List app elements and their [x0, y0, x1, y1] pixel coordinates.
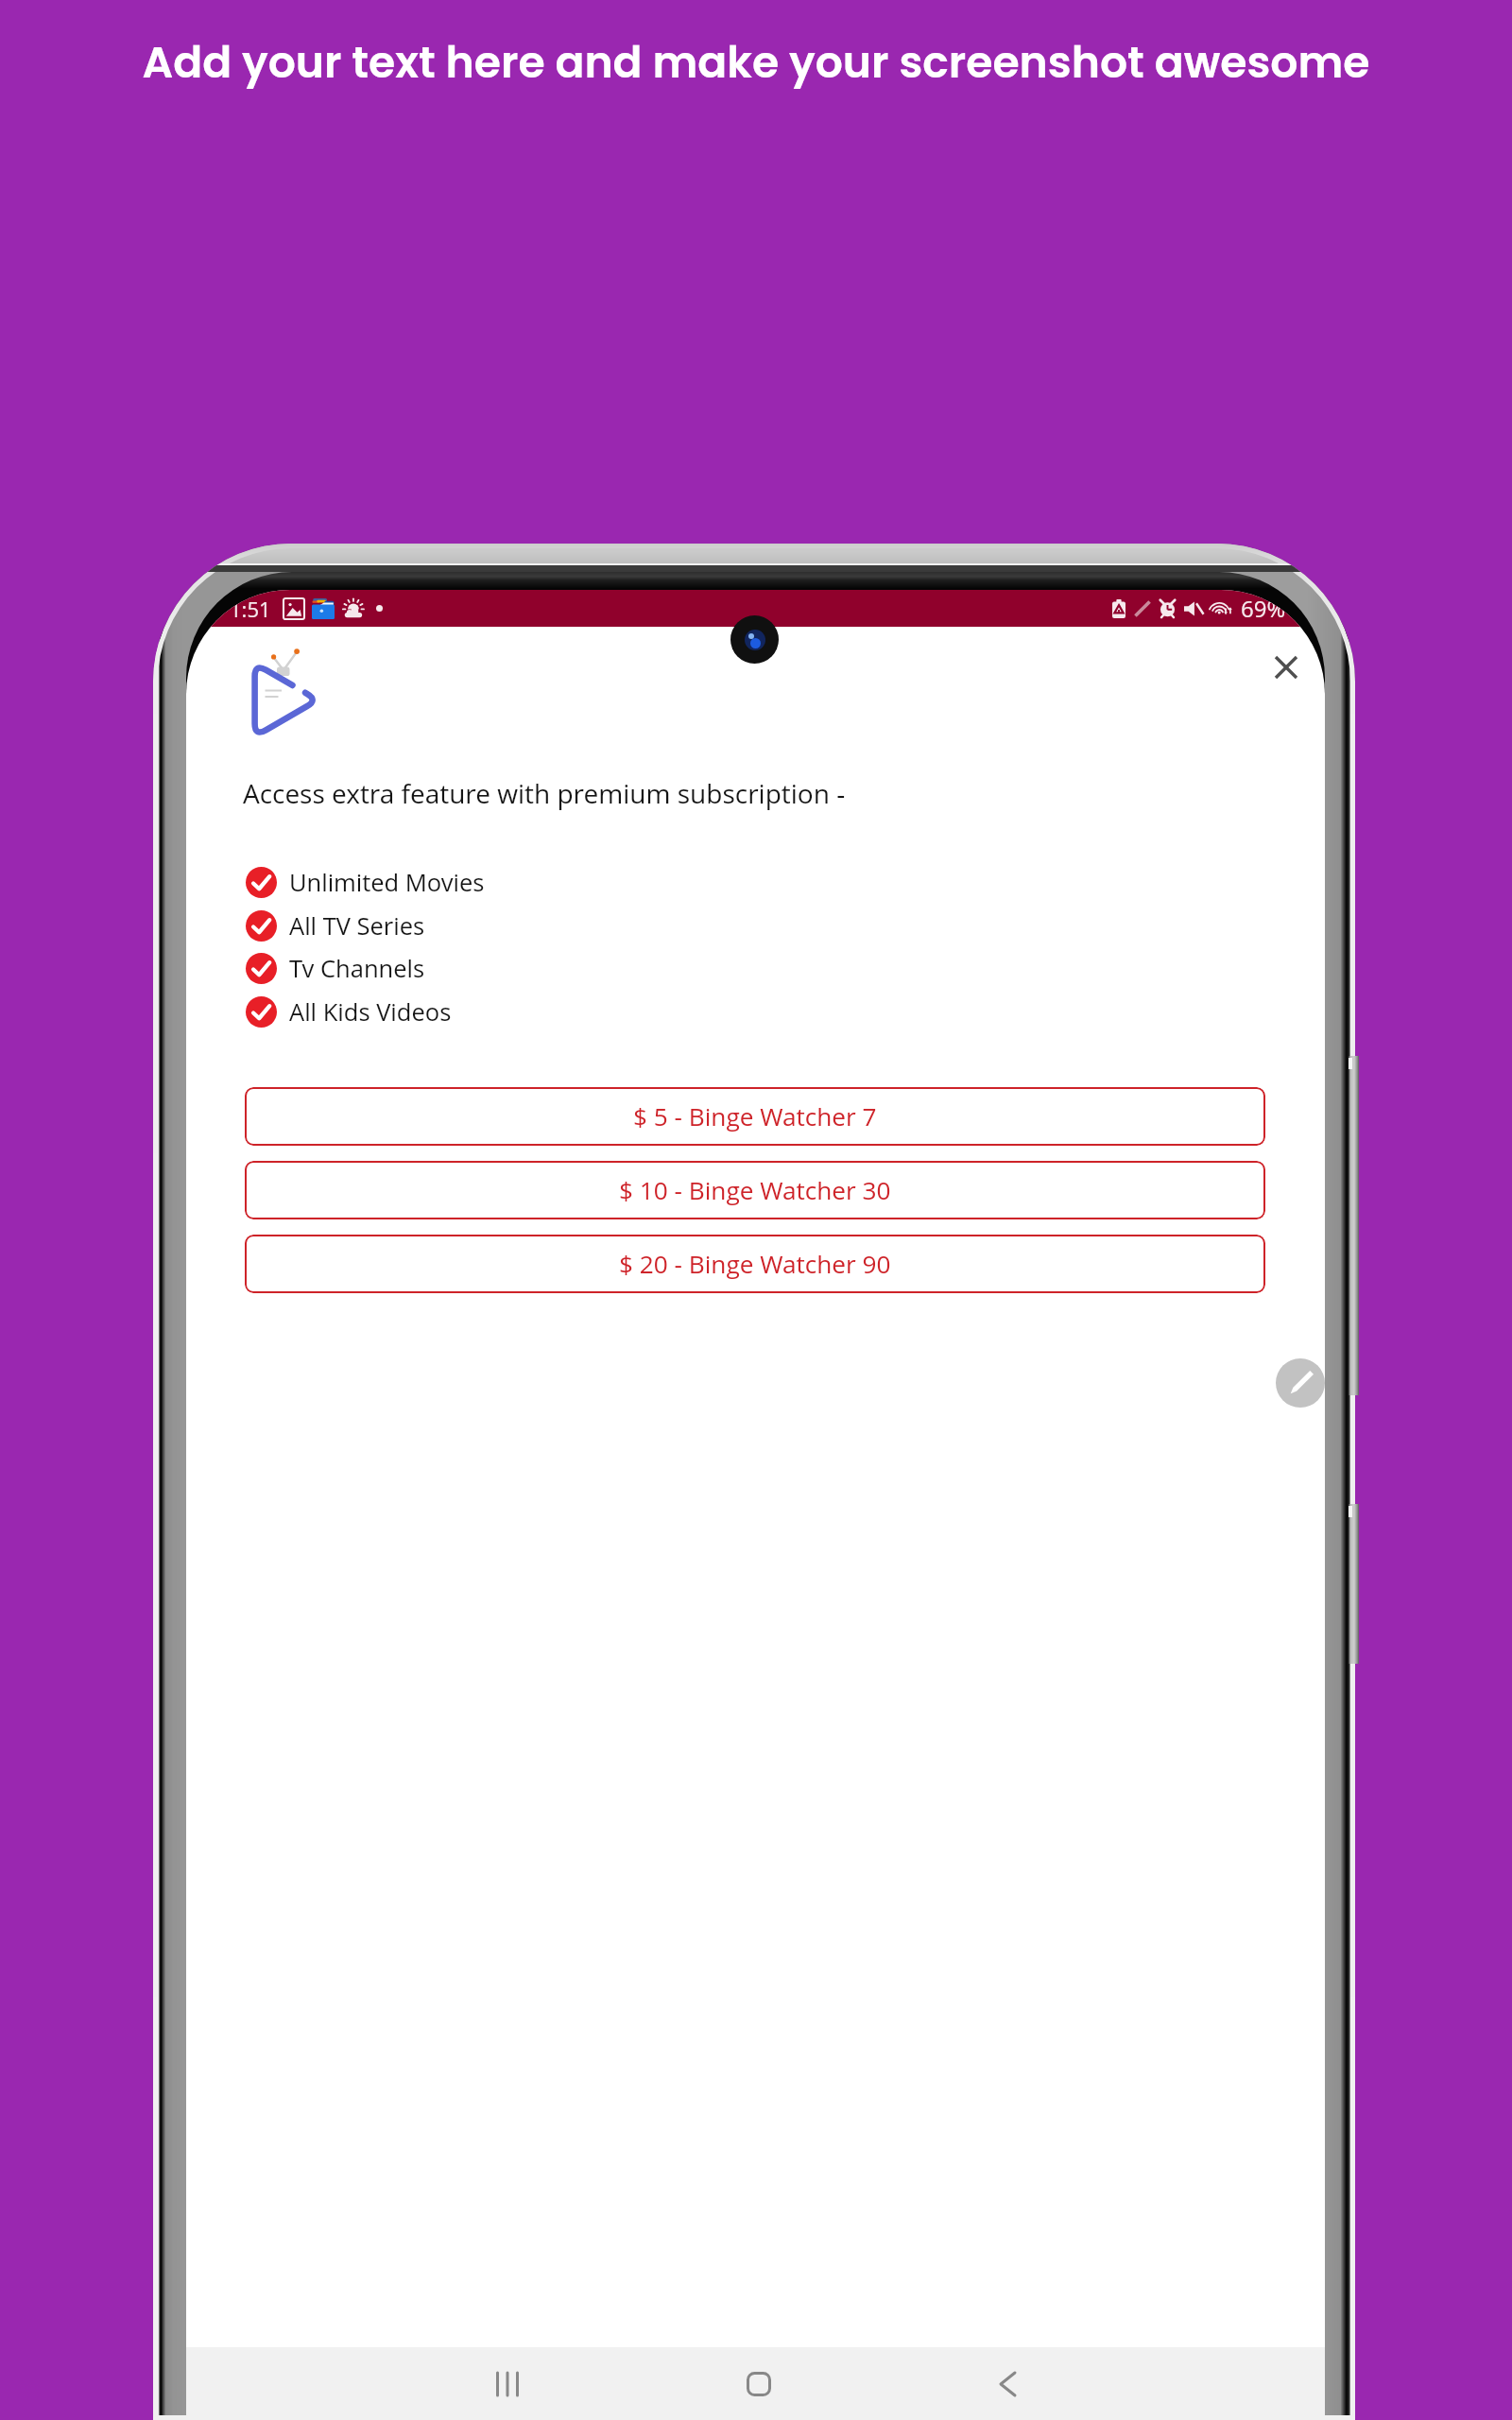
staticText: Unlimited Movies — [289, 866, 485, 899]
button[interactable]: Edit — [1276, 1358, 1325, 1408]
staticText: Add your text here and make your screens… — [142, 32, 1370, 93]
button[interactable]: Tv Channels — [246, 950, 425, 986]
staticText: $ 5 - Binge Watcher 7 — [633, 1099, 877, 1133]
button[interactable]: Recents — [479, 2356, 536, 2412]
staticText: $ 20 - Binge Watcher 90 — [619, 1247, 891, 1281]
staticText: $ 10 - Binge Watcher 30 — [619, 1173, 891, 1207]
button[interactable]: Close — [1258, 639, 1314, 696]
button[interactable]: All Kids Videos — [246, 994, 452, 1029]
button[interactable]: $ 10 - Binge Watcher 30 — [245, 1161, 1265, 1219]
button[interactable]: All TV Series — [246, 907, 425, 943]
staticText: Tv Channels — [289, 952, 425, 985]
staticText: All TV Series — [289, 909, 425, 942]
staticText: 69% — [1241, 593, 1286, 624]
button[interactable]: Home — [730, 2356, 787, 2412]
button[interactable]: $ 5 - Binge Watcher 7 — [245, 1087, 1265, 1146]
button[interactable]: Back — [979, 2356, 1036, 2412]
button[interactable]: Unlimited Movies — [246, 864, 485, 900]
staticText: 1:51 — [230, 595, 271, 623]
button[interactable]: $ 20 - Binge Watcher 90 — [245, 1235, 1265, 1293]
staticText: Access extra feature with premium subscr… — [243, 775, 846, 811]
staticText: All Kids Videos — [289, 995, 452, 1028]
